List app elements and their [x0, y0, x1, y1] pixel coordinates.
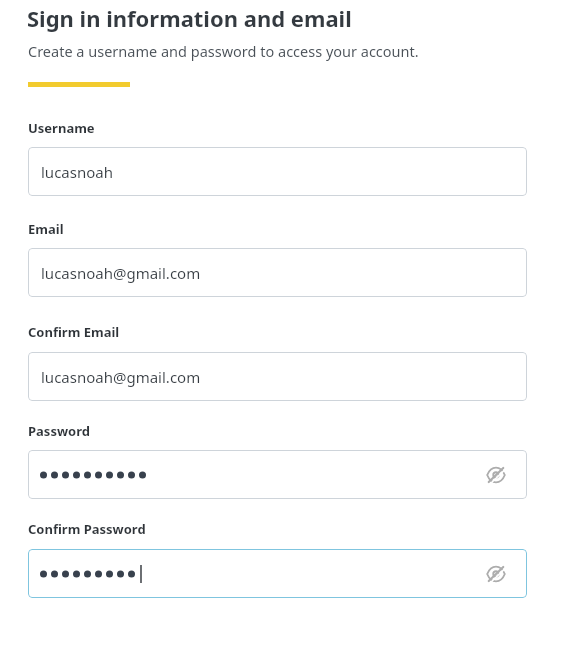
- button[interactable]: Show password: [483, 462, 509, 488]
- staticText: Username: [28, 119, 95, 137]
- button[interactable]: lucasnoah@gmail.com: [28, 352, 527, 401]
- button[interactable]: lucasnoah@gmail.com: [28, 248, 527, 297]
- staticText: lucasnoah: [41, 162, 113, 182]
- button[interactable]: Show password: [483, 561, 509, 587]
- staticText: Email: [28, 220, 64, 238]
- staticText: lucasnoah@gmail.com: [41, 263, 201, 283]
- staticText: Create a username and password to access…: [28, 41, 419, 61]
- button[interactable]: Show password: [28, 450, 527, 499]
- button[interactable]: lucasnoah: [28, 147, 527, 196]
- button[interactable]: Show password: [28, 549, 527, 598]
- staticText: lucasnoah@gmail.com: [41, 367, 201, 387]
- staticText: Password: [28, 422, 90, 440]
- staticText: Confirm Password: [28, 520, 146, 538]
- staticText: Sign in information and email: [27, 3, 352, 33]
- staticText: Confirm Email: [28, 323, 120, 341]
